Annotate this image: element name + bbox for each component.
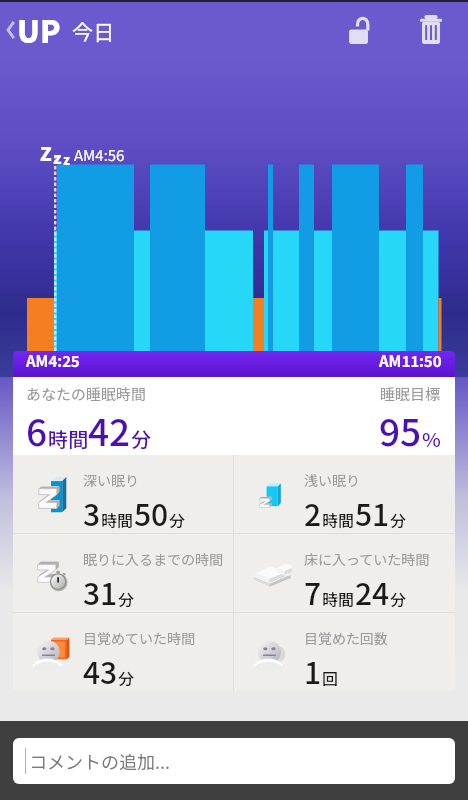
staticText: 目覚めた回数	[304, 628, 388, 648]
staticText: 51	[355, 491, 390, 534]
staticText: 1	[304, 649, 322, 692]
staticText: 分	[390, 587, 407, 610]
staticText: 分	[390, 508, 407, 531]
staticText: 目覚めていた時間	[83, 628, 195, 648]
staticText: 7	[304, 570, 322, 613]
staticText: 回	[322, 666, 339, 689]
staticText: AM11:50	[379, 350, 442, 372]
staticText: 6	[26, 403, 48, 457]
staticText: 分	[118, 666, 135, 689]
staticText: 分	[169, 508, 186, 531]
button[interactable]: 浅い眠り	[234, 455, 455, 533]
staticText: 時間	[322, 587, 355, 610]
button[interactable]: コメントの追加...	[13, 738, 455, 784]
staticText: 床に入っていた時間	[304, 549, 430, 569]
button[interactable]: 深い眠り	[13, 455, 233, 533]
button[interactable]: 床に入っていた時間	[234, 534, 455, 612]
button[interactable]: 目覚めていた時間	[13, 613, 233, 691]
staticText: UP	[17, 8, 61, 51]
button[interactable]: 眠りに入るまでの時間	[13, 534, 233, 612]
button[interactable]: Delete	[403, 1, 459, 57]
staticText: コメントの追加...	[29, 748, 171, 774]
staticText: 睡眠目標	[380, 383, 441, 405]
staticText: 時間	[48, 424, 88, 453]
staticText: 時間	[101, 508, 134, 531]
staticText: あなたの睡眠時間	[26, 383, 147, 405]
staticText: 深い眠り	[83, 470, 139, 490]
staticText: z	[53, 145, 62, 168]
staticText: 分	[118, 587, 135, 610]
staticText: 95	[379, 403, 422, 457]
staticText: 2	[304, 491, 322, 534]
button[interactable]: 目覚めた回数	[234, 613, 455, 691]
staticText: AM4:56	[74, 144, 125, 166]
staticText: 分	[131, 424, 151, 453]
staticText: 浅い眠り	[304, 470, 360, 490]
staticText: z	[63, 150, 70, 169]
button[interactable]: Unlock	[330, 1, 386, 57]
staticText: 50	[134, 491, 169, 534]
staticText: %	[422, 424, 441, 453]
button[interactable]: UP	[0, 2, 124, 57]
staticText: Z	[40, 139, 52, 167]
staticText: 3	[83, 491, 101, 534]
staticText: 眠りに入るまでの時間	[83, 549, 223, 569]
staticText: 31	[83, 570, 118, 613]
staticText: 43	[83, 649, 118, 692]
staticText: AM4:25	[26, 350, 80, 372]
staticText: 今日	[72, 16, 114, 46]
button[interactable]: あなたの睡眠時間	[13, 377, 455, 455]
staticText: 24	[355, 570, 390, 613]
staticText: 時間	[322, 508, 355, 531]
staticText: 42	[88, 403, 131, 457]
